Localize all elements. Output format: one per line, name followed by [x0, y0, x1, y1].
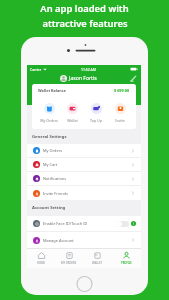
staticText: My Orders	[43, 148, 63, 153]
staticText: Jason Fortis	[69, 75, 97, 82]
staticText: An app loaded with	[40, 2, 129, 15]
button[interactable]: Top Up	[83, 97, 109, 123]
staticText: Account Setting	[32, 205, 66, 211]
button[interactable]: MY ORDERS	[55, 249, 83, 268]
staticText: HOME	[37, 261, 46, 265]
button[interactable]: My Cart	[27, 158, 141, 171]
button[interactable]: Invite	[107, 97, 133, 123]
staticText: Manage Account	[43, 238, 74, 243]
staticText: WALLET	[92, 261, 103, 265]
staticText: Carrier	[30, 67, 42, 72]
staticText: PROFILE	[121, 261, 132, 265]
staticText: 11:52 AM	[81, 67, 96, 72]
staticText: General Settings	[32, 134, 67, 140]
button[interactable]: Edit profile	[128, 73, 138, 83]
staticText: Invite Friends	[43, 191, 68, 196]
staticText: MY ORDERS	[61, 261, 77, 265]
button[interactable]: My Orders	[27, 144, 141, 157]
button[interactable]: Wallet	[59, 97, 85, 123]
button[interactable]: Invite Friends	[27, 186, 141, 200]
staticText: My Cart	[43, 162, 58, 167]
button[interactable]: Enable Face ID/Touch ID	[27, 216, 141, 231]
staticText: Invite	[115, 118, 125, 123]
staticText: Wallet	[67, 118, 78, 123]
staticText: Enable Face ID/Touch ID	[43, 221, 88, 226]
button[interactable]: PROFILE	[112, 249, 141, 268]
staticText: Wallet Balance	[38, 88, 66, 93]
staticText: Notifications	[43, 176, 67, 181]
staticText: My Orders	[40, 118, 58, 123]
button[interactable]: WALLET	[83, 249, 112, 268]
button[interactable]: Manage Account	[27, 232, 141, 248]
staticText: attractive features	[42, 17, 128, 30]
button[interactable]: HOME	[27, 249, 55, 268]
button[interactable]: Notifications	[27, 172, 141, 185]
staticText: Top Up	[90, 118, 102, 123]
button[interactable]: My Orders	[36, 97, 62, 123]
staticText: $ 699.00	[114, 88, 130, 93]
